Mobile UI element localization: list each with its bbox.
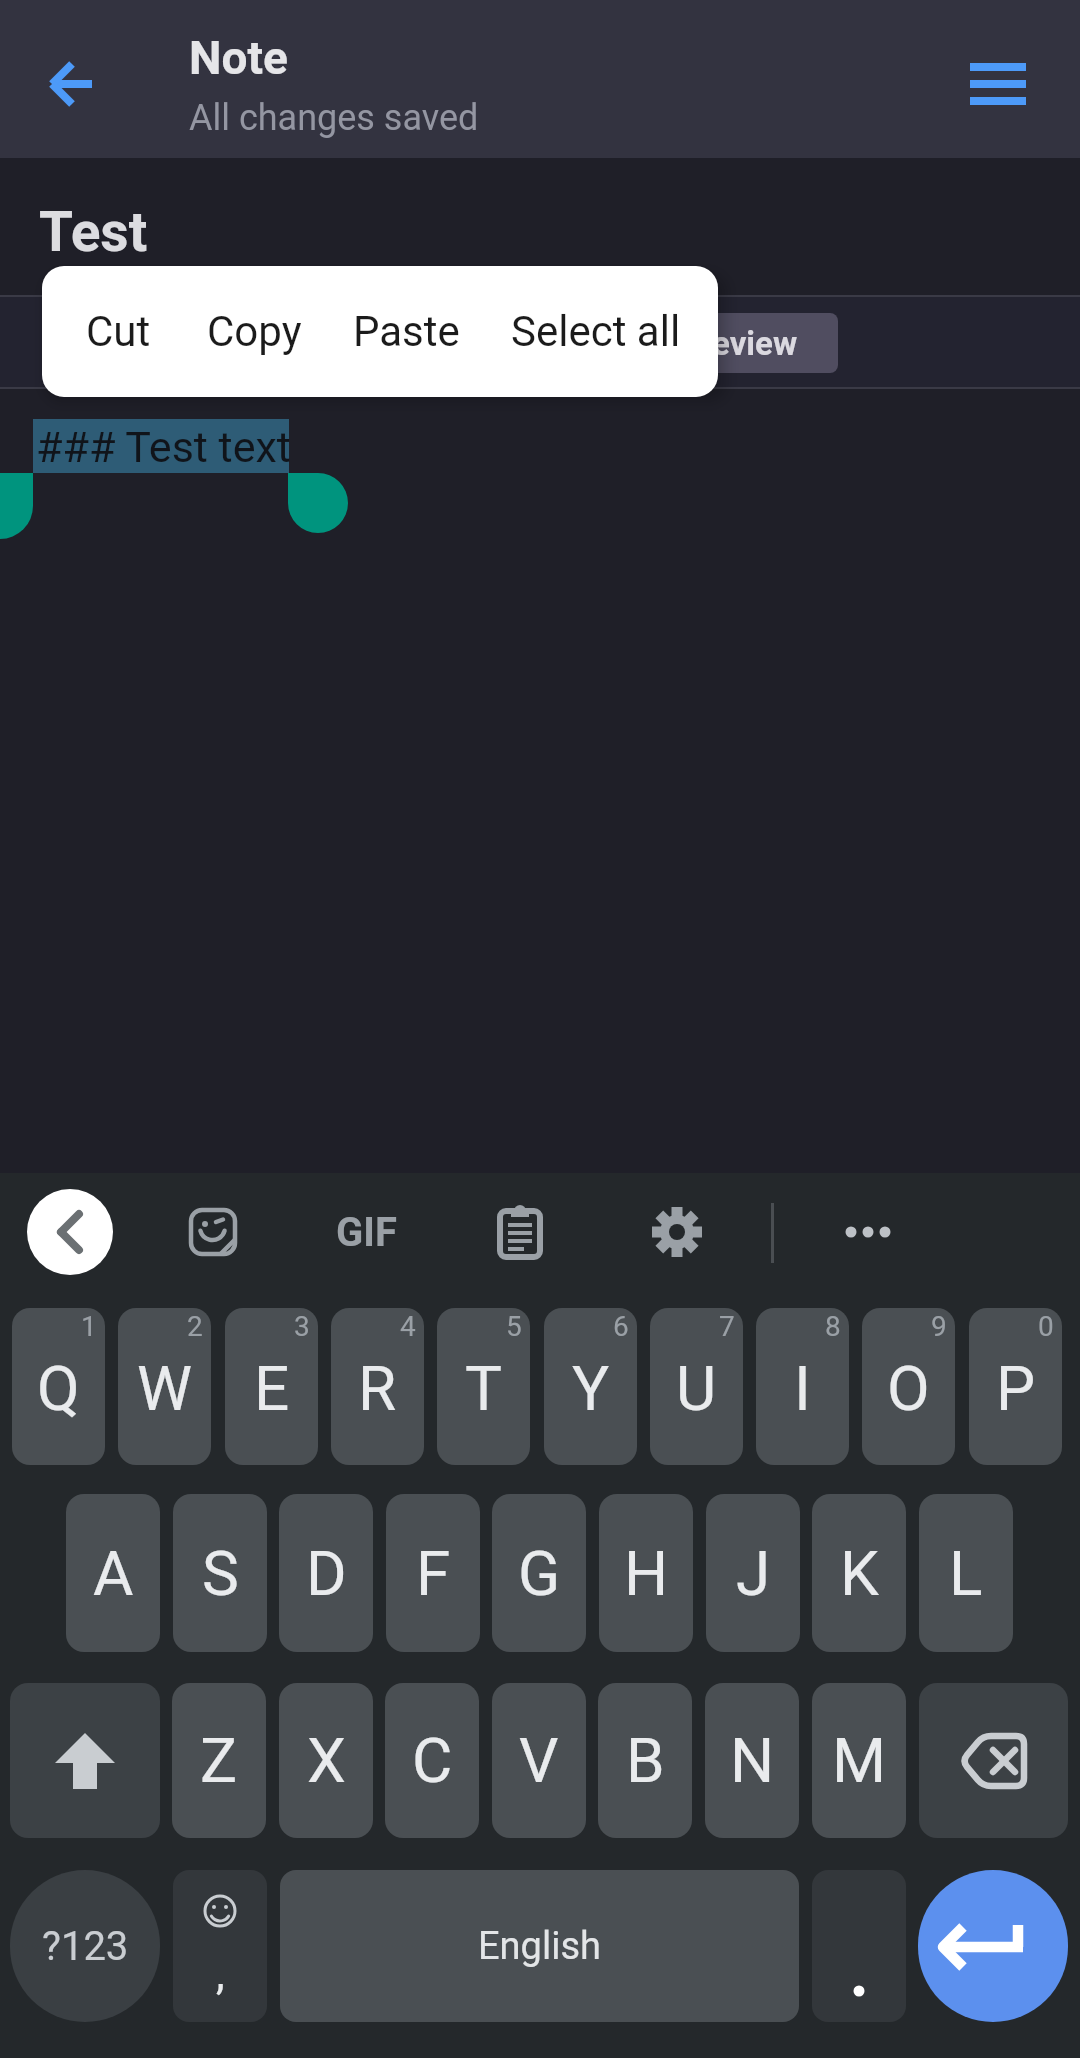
staticText: , bbox=[216, 1948, 225, 2000]
button[interactable]: Cut bbox=[58, 266, 178, 397]
staticText: F bbox=[416, 1537, 451, 1610]
button[interactable]: Preview bbox=[638, 313, 838, 373]
button[interactable]: Z bbox=[172, 1683, 266, 1838]
staticText: 1 bbox=[81, 1310, 97, 1343]
button[interactable] bbox=[10, 1683, 160, 1838]
button[interactable] bbox=[919, 1683, 1068, 1838]
staticText: Y bbox=[572, 1352, 610, 1425]
button[interactable]: A bbox=[66, 1494, 160, 1652]
staticText: 6 bbox=[613, 1310, 629, 1343]
button[interactable]: N bbox=[705, 1683, 799, 1838]
staticText: 2 bbox=[187, 1310, 203, 1343]
staticText: Z bbox=[200, 1724, 238, 1797]
button[interactable]: , bbox=[173, 1870, 267, 2022]
button[interactable]: Paste bbox=[338, 266, 475, 397]
staticText: O bbox=[887, 1352, 930, 1425]
staticText: Preview bbox=[679, 324, 798, 363]
staticText: 8 bbox=[825, 1310, 841, 1343]
button[interactable]: M bbox=[812, 1683, 906, 1838]
staticText: S bbox=[202, 1537, 239, 1610]
button[interactable] bbox=[492, 1204, 548, 1260]
staticText: N bbox=[730, 1724, 775, 1797]
button[interactable] bbox=[820, 1204, 916, 1260]
button[interactable]: L bbox=[919, 1494, 1013, 1652]
button[interactable] bbox=[27, 1189, 113, 1275]
button[interactable]: F bbox=[386, 1494, 480, 1652]
staticText: D bbox=[306, 1537, 347, 1610]
button[interactable]: U bbox=[650, 1308, 743, 1465]
staticText: All changes saved bbox=[189, 97, 479, 139]
staticText: W bbox=[137, 1352, 193, 1425]
button[interactable]: H bbox=[599, 1494, 693, 1652]
staticText: P bbox=[996, 1352, 1036, 1425]
staticText: Note bbox=[189, 31, 288, 85]
staticText: 7 bbox=[719, 1310, 735, 1343]
button[interactable] bbox=[950, 36, 1046, 132]
staticText: V bbox=[519, 1724, 559, 1797]
staticText: J bbox=[736, 1537, 771, 1610]
staticText: U bbox=[676, 1352, 717, 1425]
staticText: I bbox=[794, 1352, 811, 1425]
staticText: Paste bbox=[353, 307, 460, 356]
button[interactable]: S bbox=[173, 1494, 267, 1652]
button[interactable]: I bbox=[756, 1308, 849, 1465]
staticText: Test bbox=[39, 200, 148, 264]
staticText: ### Test text bbox=[36, 422, 291, 472]
staticText: Select all bbox=[511, 307, 681, 356]
button[interactable]: K bbox=[812, 1494, 906, 1652]
button[interactable] bbox=[24, 36, 120, 132]
button[interactable] bbox=[812, 1870, 906, 2022]
button[interactable]: O bbox=[862, 1308, 955, 1465]
staticText: ?123 bbox=[42, 1923, 129, 1970]
button[interactable]: R bbox=[331, 1308, 424, 1465]
staticText: 4 bbox=[400, 1310, 416, 1343]
staticText: Cut bbox=[86, 307, 151, 356]
staticText: 0 bbox=[1038, 1310, 1054, 1343]
button[interactable]: Copy bbox=[194, 266, 314, 397]
button[interactable] bbox=[649, 1204, 705, 1260]
button[interactable]: E bbox=[225, 1308, 318, 1465]
button[interactable]: D bbox=[279, 1494, 373, 1652]
staticText: X bbox=[307, 1724, 346, 1797]
button[interactable]: W bbox=[118, 1308, 211, 1465]
staticText: H bbox=[624, 1537, 669, 1610]
button[interactable]: V bbox=[492, 1683, 586, 1838]
staticText: K bbox=[840, 1537, 879, 1610]
button[interactable] bbox=[918, 1870, 1068, 2022]
button[interactable]: G bbox=[492, 1494, 586, 1652]
button[interactable]: GIF bbox=[320, 1202, 412, 1262]
staticText: 9 bbox=[931, 1310, 947, 1343]
button[interactable]: Q bbox=[12, 1308, 105, 1465]
button[interactable]: J bbox=[706, 1494, 800, 1652]
staticText: G bbox=[518, 1537, 561, 1610]
staticText: 3 bbox=[294, 1310, 310, 1343]
button[interactable]: B bbox=[598, 1683, 692, 1838]
staticText: B bbox=[626, 1724, 665, 1797]
button[interactable]: C bbox=[385, 1683, 479, 1838]
staticText: E bbox=[254, 1352, 290, 1425]
staticText: A bbox=[93, 1537, 134, 1610]
staticText: C bbox=[412, 1724, 453, 1797]
button[interactable]: Y bbox=[544, 1308, 637, 1465]
staticText: Copy bbox=[207, 307, 302, 356]
button[interactable]: English bbox=[280, 1870, 799, 2022]
button[interactable]: X bbox=[279, 1683, 373, 1838]
button[interactable]: T bbox=[437, 1308, 530, 1465]
staticText: English bbox=[478, 1924, 601, 1969]
staticText: 5 bbox=[506, 1310, 522, 1343]
staticText: R bbox=[358, 1352, 397, 1425]
button[interactable]: P bbox=[969, 1308, 1062, 1465]
staticText: T bbox=[465, 1352, 502, 1425]
staticText: GIF bbox=[336, 1209, 397, 1256]
button[interactable] bbox=[185, 1204, 241, 1260]
staticText: Q bbox=[37, 1352, 80, 1425]
staticText: M bbox=[832, 1724, 887, 1797]
button[interactable]: ?123 bbox=[10, 1870, 160, 2022]
staticText: L bbox=[949, 1537, 983, 1610]
button[interactable]: Select all bbox=[490, 266, 702, 397]
